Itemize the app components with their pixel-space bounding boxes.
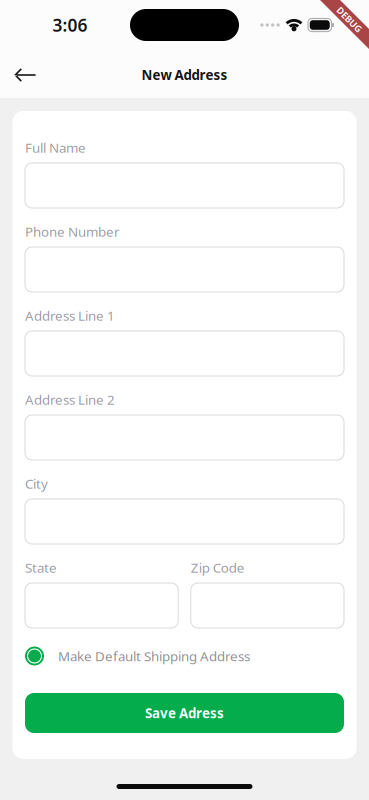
staticText: Make Default Shipping Address bbox=[58, 647, 250, 665]
staticText: Address Line 1 bbox=[25, 307, 115, 324]
staticText: City bbox=[25, 475, 48, 492]
staticText: 3:06 bbox=[52, 13, 87, 36]
staticText: Full Name bbox=[25, 139, 86, 156]
staticText: Phone Number bbox=[25, 223, 120, 240]
staticText: Save Adress bbox=[145, 704, 224, 722]
button[interactable]: Make Default Shipping Address bbox=[25, 645, 344, 667]
button[interactable]: Save Adress bbox=[25, 693, 344, 733]
staticText: DEBUG bbox=[333, 13, 365, 26]
button[interactable]: Back bbox=[3, 53, 47, 97]
staticText: State bbox=[25, 559, 57, 576]
staticText: Zip Code bbox=[191, 559, 245, 576]
staticText: Address Line 2 bbox=[25, 391, 115, 408]
staticText: New Address bbox=[141, 66, 227, 84]
